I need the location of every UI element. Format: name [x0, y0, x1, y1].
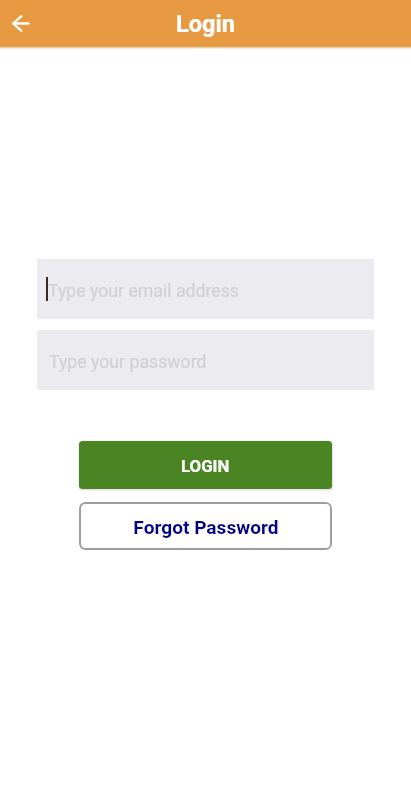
button[interactable]: Type your password — [37, 330, 374, 390]
staticText: Type your password — [49, 352, 207, 373]
button[interactable]: Type your email address — [37, 259, 374, 319]
staticText: Type your email address — [48, 281, 239, 302]
staticText: Forgot Password — [133, 516, 279, 538]
button[interactable]: LOGIN — [79, 441, 332, 489]
button[interactable]: Forgot Password — [79, 502, 332, 550]
staticText: LOGIN — [181, 456, 230, 476]
button[interactable]: Back — [0, 3, 40, 43]
staticText: Login — [176, 10, 235, 38]
